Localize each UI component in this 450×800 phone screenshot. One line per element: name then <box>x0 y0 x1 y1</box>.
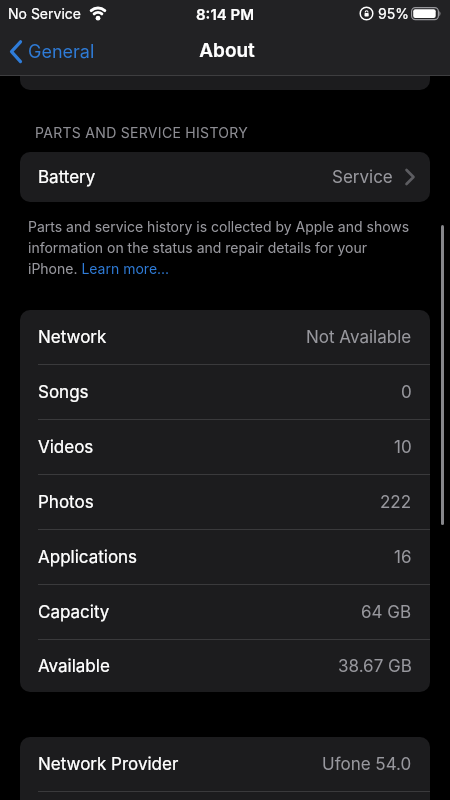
button[interactable]: Battery <box>20 152 430 202</box>
staticText: No Service <box>8 5 81 22</box>
staticText: Battery <box>38 167 96 188</box>
staticText: About <box>162 39 292 62</box>
staticText: 16 <box>394 547 412 568</box>
staticText: PARTS AND SERVICE HISTORY <box>35 124 249 141</box>
staticText: Capacity <box>38 602 110 623</box>
staticText: 38.67 GB <box>338 656 412 677</box>
button[interactable]: Applications <box>20 530 430 585</box>
staticText: Available <box>38 656 110 677</box>
button[interactable]: Capacity <box>20 585 430 640</box>
button[interactable]: General <box>28 41 95 63</box>
button[interactable]: Photos <box>20 475 430 530</box>
staticText: Parts and service history is collected b… <box>28 218 410 235</box>
staticText: 95% <box>378 5 409 22</box>
button[interactable]: Network Provider <box>20 737 430 792</box>
staticText: 10 <box>394 437 412 458</box>
staticText: 0 <box>401 382 412 403</box>
staticText: Songs <box>38 382 89 403</box>
button[interactable] <box>9 40 23 64</box>
staticText: Network Provider <box>38 754 179 775</box>
button[interactable]: Videos <box>20 420 430 475</box>
staticText: 222 <box>380 492 412 513</box>
button[interactable]: Available <box>20 640 430 692</box>
staticText: information on the status and repair det… <box>28 239 367 256</box>
staticText: Photos <box>38 492 94 513</box>
staticText: Applications <box>38 547 138 568</box>
staticText: 64 GB <box>361 602 412 623</box>
staticText: Ufone 54.0 <box>322 754 412 775</box>
staticText: 8:14 PM <box>160 5 290 23</box>
staticText: Videos <box>38 437 94 458</box>
staticText: Network <box>38 327 107 348</box>
staticText: Not Available <box>306 327 412 348</box>
button[interactable]: Network <box>20 310 430 365</box>
staticText: Service <box>332 167 393 188</box>
button[interactable]: Songs <box>20 365 430 420</box>
button[interactable]: iPhone. Learn more... <box>28 260 170 277</box>
